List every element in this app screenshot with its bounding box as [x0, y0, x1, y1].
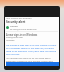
staticText: A new sign-in on Windows — [6, 33, 38, 36]
staticText: no-reply@accounts.google.com — [10, 28, 37, 30]
staticText: You received this email to let you know … — [6, 57, 58, 62]
button[interactable]: Google — [6, 25, 58, 30]
staticText: Your account was accessed — [6, 17, 32, 20]
staticText: Google — [10, 25, 18, 28]
staticText: Windows — [6, 39, 15, 42]
staticText: name@gmail.com — [6, 36, 23, 39]
staticText: We noticed a new sign-in to your Google … — [6, 44, 58, 56]
staticText: Security alert — [6, 20, 26, 24]
